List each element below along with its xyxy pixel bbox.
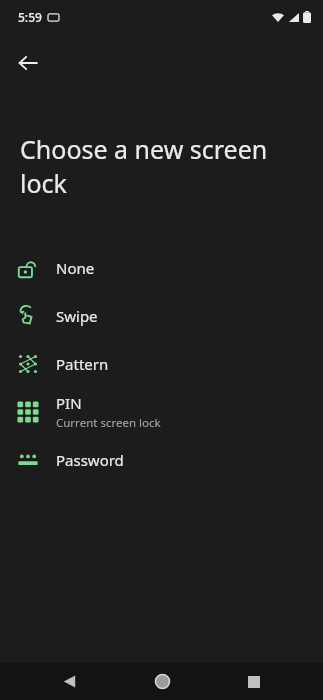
staticText: Current screen lock [56,415,161,431]
button[interactable]: Back [8,43,48,83]
button[interactable]: PIN [0,388,323,436]
staticText: PIN [56,393,82,413]
button[interactable]: None [0,244,323,292]
staticText: Choose a new screen lock [20,132,299,200]
button[interactable]: Pattern [0,340,323,388]
staticText: Password [56,450,124,470]
button[interactable]: Home [139,663,185,700]
staticText: Pattern [56,354,109,374]
button[interactable]: Swipe [0,292,323,340]
staticText: Swipe [56,306,98,326]
button[interactable]: Back [46,663,92,700]
button[interactable]: Password [0,436,323,484]
staticText: 5:59 [18,9,42,25]
button[interactable]: Recent apps [231,663,277,700]
staticText: None [56,258,95,278]
